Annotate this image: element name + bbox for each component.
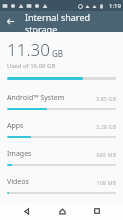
staticText: Used of 16.00 GB <box>7 62 56 70</box>
staticText: 11.30 <box>7 38 50 61</box>
staticText: 168 MB <box>96 179 116 186</box>
staticText: Videos <box>7 177 96 187</box>
staticText: Apps <box>7 121 96 131</box>
button[interactable]: Back <box>0 11 21 32</box>
button[interactable]: Recents <box>88 202 106 220</box>
staticText: GB <box>52 48 64 59</box>
staticText: Images <box>7 149 96 159</box>
staticText: 3.85 GB <box>96 95 116 102</box>
staticText: 1:19 <box>109 2 121 10</box>
staticText: 683 MB <box>96 151 116 158</box>
staticText: Android™ System <box>7 93 96 103</box>
staticText: Internal shared storage <box>25 11 123 32</box>
button[interactable]: Apps <box>0 115 123 143</box>
button[interactable]: Android™ System <box>0 87 123 115</box>
button[interactable]: Videos <box>0 171 123 199</box>
button[interactable]: Home <box>53 202 71 220</box>
button[interactable]: Back <box>17 202 35 220</box>
staticText: 3.28 GB <box>96 123 116 130</box>
button[interactable]: Images <box>0 143 123 171</box>
